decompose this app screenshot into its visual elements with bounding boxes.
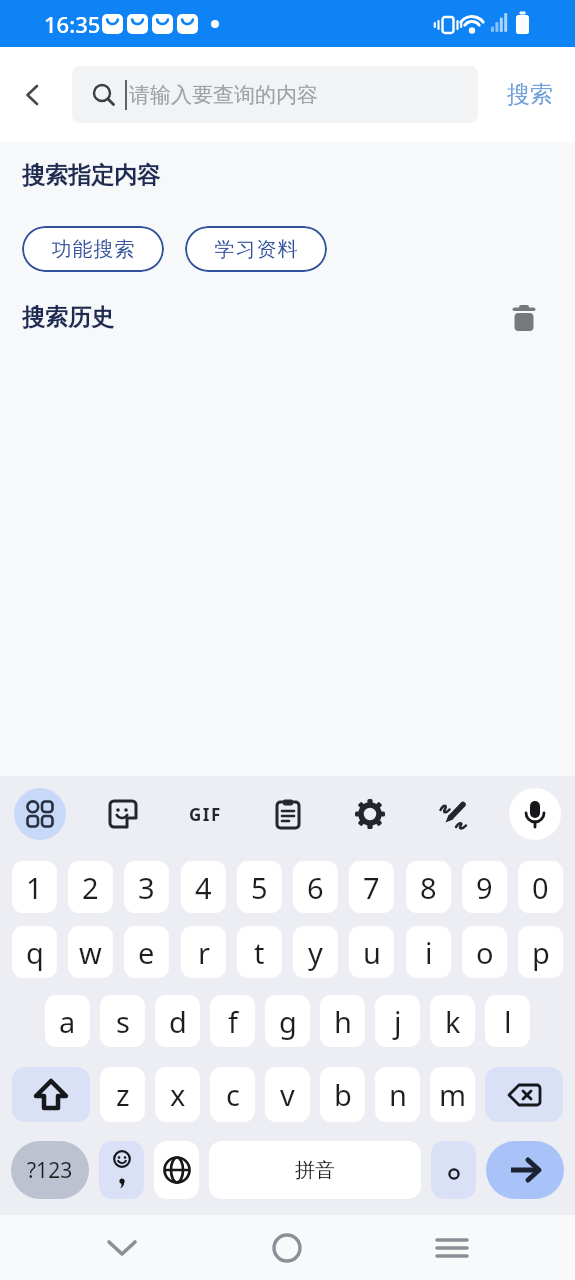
button[interactable] — [431, 1141, 476, 1199]
button[interactable]: 8 — [406, 861, 451, 913]
staticText: 8 — [420, 868, 437, 907]
button[interactable]: y — [293, 926, 338, 978]
staticText: m — [439, 1075, 467, 1114]
button[interactable] — [383, 1215, 575, 1280]
staticText: s — [116, 1002, 130, 1041]
button[interactable]: k — [430, 995, 475, 1047]
button[interactable]: o — [462, 926, 507, 978]
button[interactable]: c — [210, 1067, 255, 1122]
staticText: z — [116, 1075, 130, 1114]
button[interactable]: w — [68, 926, 113, 978]
button[interactable] — [486, 1141, 564, 1199]
button[interactable] — [21, 83, 45, 107]
button[interactable]: 功能搜索 — [22, 226, 164, 272]
button[interactable]: z — [100, 1067, 145, 1122]
button[interactable] — [191, 1215, 383, 1280]
staticText: y — [308, 933, 323, 972]
button[interactable]: 4 — [181, 861, 226, 913]
button[interactable]: d — [155, 995, 200, 1047]
staticText: 5 — [251, 868, 268, 907]
staticText: 搜索指定内容 — [22, 161, 160, 190]
staticText: t — [254, 933, 265, 972]
button[interactable]: v — [265, 1067, 310, 1122]
button[interactable]: GIF — [179, 788, 231, 840]
staticText: e — [138, 933, 155, 972]
staticText: 0 — [532, 868, 549, 907]
staticText: 搜索历史 — [22, 303, 114, 332]
button[interactable]: l — [485, 995, 530, 1047]
staticText: 2 — [82, 868, 99, 907]
button[interactable]: 3 — [124, 861, 169, 913]
staticText: j — [394, 1002, 402, 1041]
button[interactable]: 9 — [462, 861, 507, 913]
button[interactable]: m — [430, 1067, 475, 1122]
button[interactable]: ?123 — [11, 1141, 89, 1199]
button[interactable]: a — [45, 995, 90, 1047]
staticText: a — [59, 1002, 76, 1041]
button[interactable]: n — [375, 1067, 420, 1122]
button[interactable]: s — [100, 995, 145, 1047]
button[interactable] — [344, 788, 396, 840]
button[interactable] — [485, 1067, 563, 1122]
staticText: k — [445, 1002, 461, 1041]
button[interactable] — [12, 1067, 90, 1122]
staticText: 16:35 — [44, 9, 101, 39]
button[interactable]: 学习资料 — [185, 226, 327, 272]
staticText: b — [334, 1075, 352, 1114]
button[interactable]: x — [155, 1067, 200, 1122]
button[interactable]: 5 — [237, 861, 282, 913]
staticText: h — [334, 1002, 352, 1041]
button[interactable]: e — [124, 926, 169, 978]
staticText: 3 — [138, 868, 155, 907]
button[interactable]: u — [349, 926, 394, 978]
button[interactable]: 7 — [349, 861, 394, 913]
button[interactable]: 搜索 — [507, 80, 553, 109]
staticText: 请输入要查询的内容 — [129, 82, 318, 108]
button[interactable]: t — [237, 926, 282, 978]
button[interactable]: i — [406, 926, 451, 978]
staticText: d — [169, 1002, 187, 1041]
staticText: w — [79, 933, 102, 972]
staticText: 搜索 — [507, 80, 553, 109]
staticText: 1 — [26, 868, 43, 907]
staticText: c — [226, 1075, 240, 1114]
button[interactable]: p — [518, 926, 563, 978]
button[interactable] — [99, 1141, 144, 1199]
button[interactable] — [14, 788, 66, 840]
staticText: 学习资料 — [214, 237, 298, 262]
staticText: o — [476, 933, 494, 972]
staticText: n — [389, 1075, 407, 1114]
staticText: u — [363, 933, 381, 972]
staticText: q — [26, 933, 44, 972]
button[interactable]: h — [320, 995, 365, 1047]
staticText: i — [425, 933, 433, 972]
button[interactable]: 1 — [12, 861, 57, 913]
button[interactable] — [427, 788, 479, 840]
staticText: GIF — [189, 803, 222, 826]
staticText: 功能搜索 — [51, 237, 135, 262]
button[interactable] — [0, 1215, 191, 1280]
button[interactable]: r — [181, 926, 226, 978]
button[interactable] — [509, 788, 561, 840]
staticText: 6 — [307, 868, 324, 907]
button[interactable] — [154, 1141, 199, 1199]
staticText: l — [504, 1002, 512, 1041]
staticText: 7 — [363, 868, 380, 907]
staticText: r — [198, 933, 210, 972]
button[interactable]: 拼音 — [209, 1141, 421, 1199]
button[interactable]: b — [320, 1067, 365, 1122]
button[interactable]: g — [265, 995, 310, 1047]
button[interactable] — [97, 788, 149, 840]
staticText: ?123 — [27, 1156, 73, 1185]
button[interactable]: f — [210, 995, 255, 1047]
staticText: 9 — [476, 868, 493, 907]
button[interactable]: 6 — [293, 861, 338, 913]
staticText: g — [279, 1002, 297, 1041]
button[interactable]: 2 — [68, 861, 113, 913]
button[interactable] — [511, 305, 537, 331]
button[interactable]: 0 — [518, 861, 563, 913]
button[interactable]: j — [375, 995, 420, 1047]
button[interactable]: q — [12, 926, 57, 978]
button[interactable] — [262, 788, 314, 840]
staticText: p — [532, 933, 550, 972]
